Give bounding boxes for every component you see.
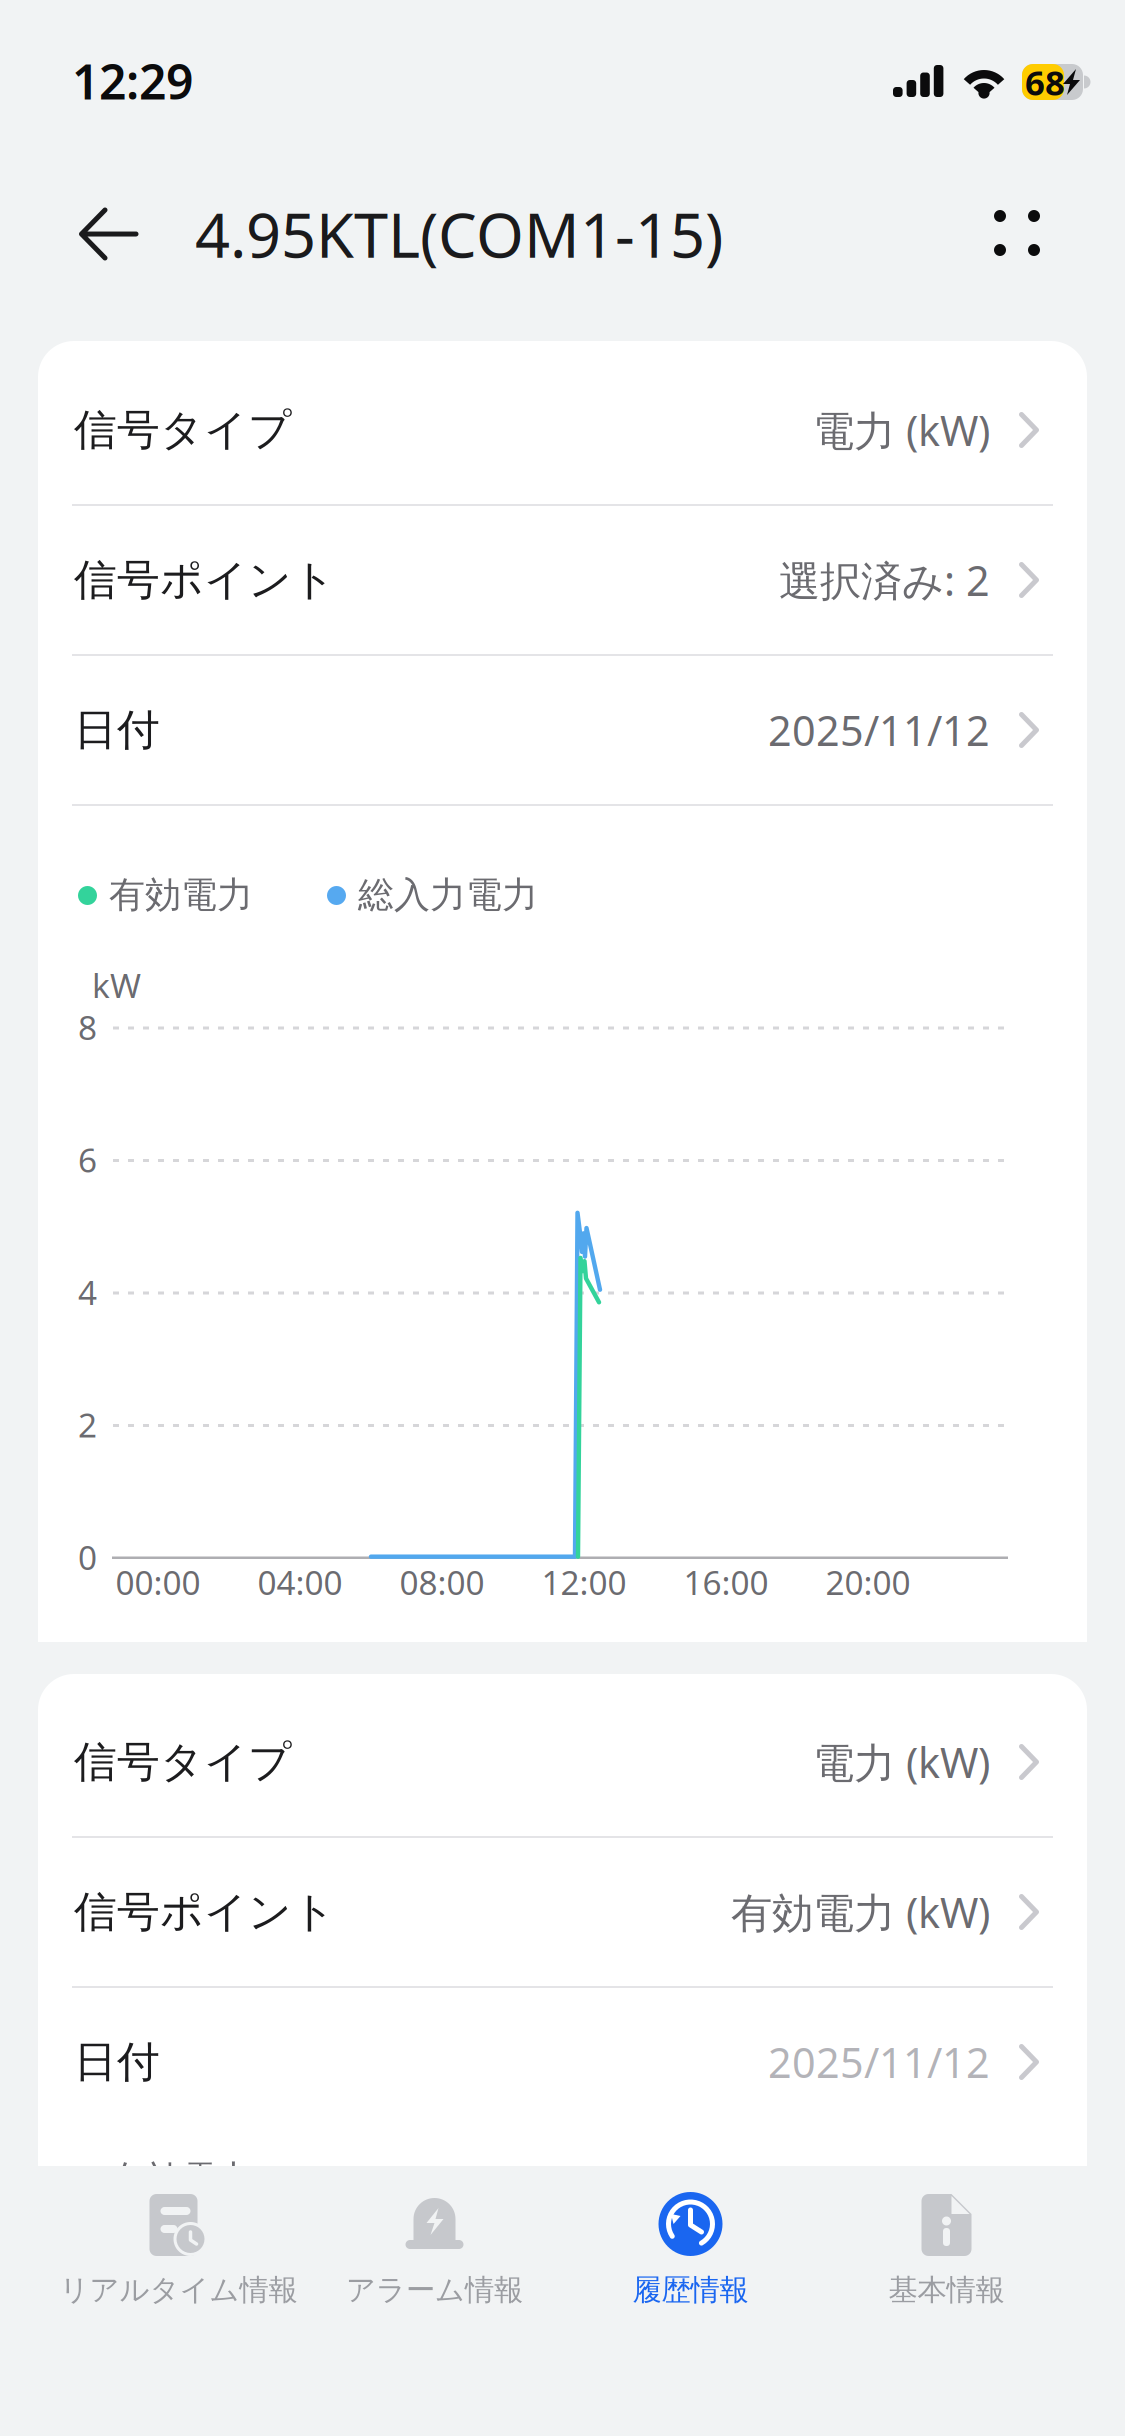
button[interactable]: Back — [54, 179, 164, 289]
staticText: 04:00 — [257, 1560, 342, 1604]
button[interactable]: 基本情報 — [818, 2166, 1074, 2336]
button[interactable]: 信号タイプ — [38, 356, 1087, 504]
staticText: リアルタイム情報 — [59, 2272, 297, 2308]
button[interactable]: 信号ポイント — [38, 1838, 1087, 1986]
staticText: 信号タイプ — [74, 404, 292, 456]
button[interactable]: 信号ポイント — [38, 506, 1087, 654]
button[interactable]: More options — [962, 178, 1072, 288]
staticText: 有効電力 — [109, 2157, 253, 2201]
staticText: 2025/11/12 — [768, 2035, 990, 2089]
staticText: アラーム情報 — [346, 2272, 523, 2308]
staticText: 4.95KTL(COM1-15) — [195, 193, 723, 275]
staticText: 信号タイプ — [74, 1736, 292, 1788]
staticText: 00:00 — [115, 1560, 200, 1604]
staticText: kW — [92, 963, 141, 1007]
staticText: 信号ポイント — [74, 1886, 336, 1938]
staticText: 16:00 — [683, 1560, 768, 1604]
staticText: 2 — [78, 1402, 97, 1447]
staticText: 選択済み: 2 — [779, 553, 990, 607]
button[interactable]: 4.95KTL(COM1-15) — [195, 194, 895, 274]
staticText: 08:00 — [399, 1560, 484, 1604]
staticText: 12:29 — [72, 49, 193, 113]
staticText: 電力 (kW) — [813, 1735, 990, 1789]
button[interactable]: 日付 — [38, 1988, 1087, 2136]
staticText: 履歴情報 — [632, 2272, 748, 2308]
staticText: 信号ポイント — [74, 554, 336, 606]
staticText: 総入力電力 — [358, 873, 538, 917]
staticText: 電力 (kW) — [813, 403, 990, 457]
staticText: 20:00 — [825, 1560, 910, 1604]
staticText: 基本情報 — [888, 2272, 1004, 2308]
staticText: 8 — [78, 1005, 97, 1049]
staticText: 2025/11/12 — [768, 703, 990, 757]
button[interactable]: アラーム情報 — [306, 2166, 562, 2336]
staticText: 日付 — [74, 704, 160, 756]
staticText: 0 — [78, 1535, 97, 1579]
staticText: 有効電力 (kW) — [731, 1885, 990, 1939]
staticText: 有効電力 — [109, 873, 253, 917]
staticText: 4 — [78, 1270, 97, 1314]
button[interactable]: リアルタイム情報 — [50, 2166, 306, 2336]
button[interactable]: 履歴情報 — [562, 2166, 818, 2336]
button[interactable]: 信号タイプ — [38, 1688, 1087, 1836]
staticText: 6 — [78, 1137, 97, 1182]
staticText: 68 — [1025, 59, 1065, 105]
staticText: 12:00 — [541, 1560, 626, 1604]
staticText: 日付 — [74, 2036, 160, 2088]
button[interactable]: 日付 — [38, 656, 1087, 804]
